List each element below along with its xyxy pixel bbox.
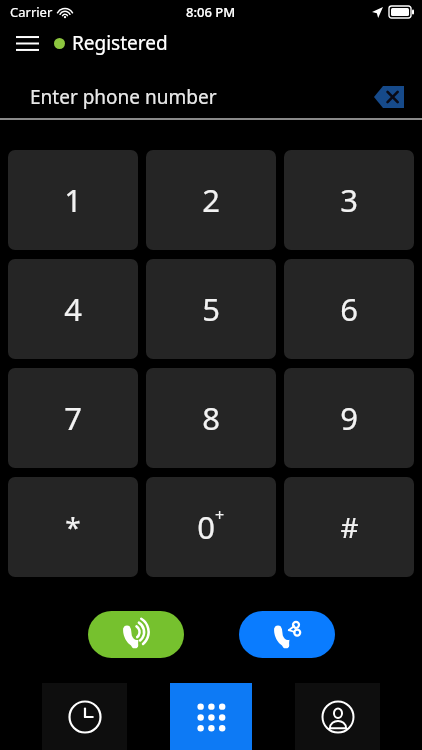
button[interactable]: 0: [146, 477, 276, 577]
staticText: Registered: [72, 30, 168, 56]
button[interactable]: 3: [284, 150, 414, 250]
button[interactable]: Menu: [8, 26, 46, 60]
staticText: 3: [340, 179, 358, 221]
staticText: 2: [202, 179, 220, 221]
button[interactable]: 6: [284, 259, 414, 359]
staticText: +: [215, 504, 225, 526]
button[interactable]: #: [284, 477, 414, 577]
staticText: 6: [340, 288, 358, 330]
button[interactable]: *: [8, 477, 138, 577]
button[interactable]: 9: [284, 368, 414, 468]
staticText: 4: [64, 288, 82, 330]
staticText: Carrier: [10, 3, 53, 21]
button[interactable]: Delete: [372, 84, 406, 110]
staticText: 1: [64, 179, 82, 221]
button[interactable]: Contacts: [295, 683, 380, 750]
button[interactable]: 2: [146, 150, 276, 250]
staticText: 0: [197, 506, 215, 548]
staticText: 8: [202, 397, 220, 439]
staticText: *: [65, 508, 81, 546]
button[interactable]: 8: [146, 368, 276, 468]
staticText: 7: [64, 397, 82, 439]
button[interactable]: Recents: [42, 683, 127, 750]
staticText: Enter phone number: [30, 84, 217, 110]
staticText: 9: [340, 397, 358, 439]
button[interactable]: 4: [8, 259, 138, 359]
staticText: 5: [202, 288, 220, 330]
staticText: 8:06 PM: [186, 3, 236, 21]
button[interactable]: 1: [8, 150, 138, 250]
button[interactable]: Video call: [239, 611, 335, 658]
button[interactable]: 7: [8, 368, 138, 468]
staticText: #: [340, 508, 359, 546]
button[interactable]: 5: [146, 259, 276, 359]
button[interactable]: Call: [88, 611, 184, 658]
button[interactable]: Keypad: [170, 683, 252, 750]
